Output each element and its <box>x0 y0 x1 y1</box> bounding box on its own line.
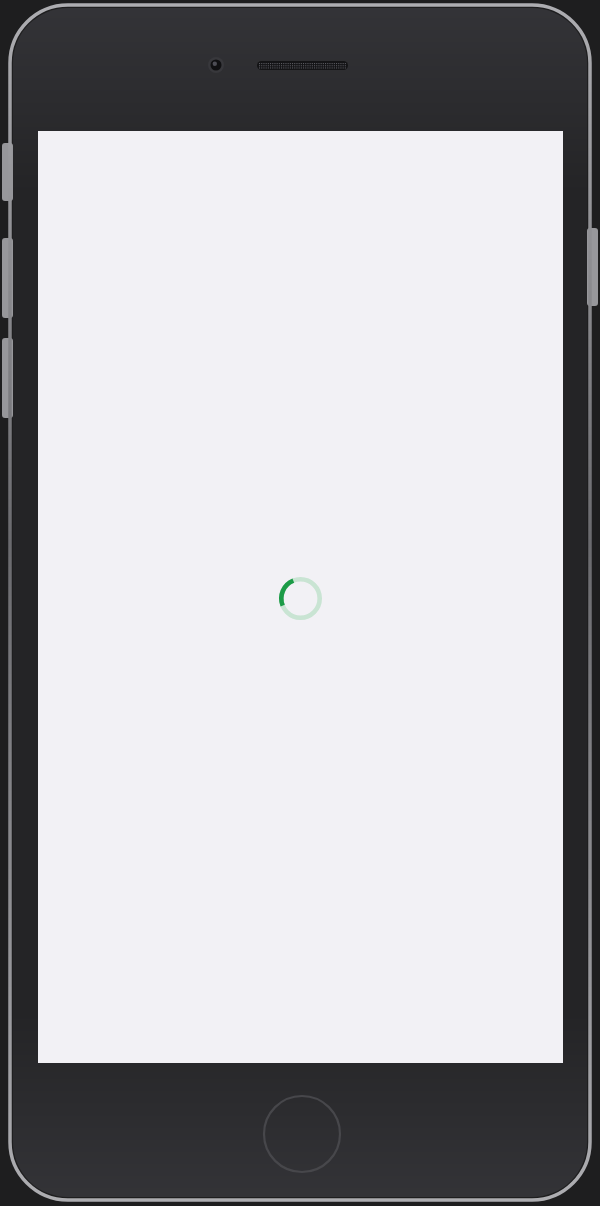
button[interactable]: Loading <box>279 577 322 620</box>
